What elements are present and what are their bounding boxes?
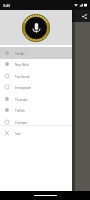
button[interactable]: TikTok — [0, 104, 72, 116]
staticText: 3:43 — [3, 3, 11, 8]
staticText: Contato — [15, 120, 28, 124]
button[interactable]: Contato — [0, 116, 72, 128]
staticText: Nos Web — [15, 62, 29, 66]
staticText: TikTok — [15, 108, 25, 112]
staticText: Instagram — [15, 85, 32, 89]
button[interactable]: Instagram — [0, 81, 72, 93]
button[interactable]: On Air — [0, 47, 72, 59]
button[interactable]: Nos Web — [0, 58, 72, 70]
staticText: On Air — [15, 51, 25, 55]
button[interactable]: Sair — [0, 127, 72, 139]
button[interactable]: Facebook — [0, 70, 72, 82]
button[interactable]: Youtube — [0, 93, 72, 105]
staticText: Facebook — [15, 74, 30, 78]
staticText: Youtube — [15, 97, 28, 101]
button[interactable]: Share — [79, 11, 89, 21]
staticText: Sair — [15, 131, 21, 135]
